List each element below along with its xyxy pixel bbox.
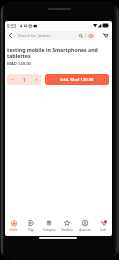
button[interactable]: Decrease quantity bbox=[7, 74, 17, 85]
staticText: testing mobile in Smartphones and tablet… bbox=[7, 46, 109, 59]
button[interactable]: Increase quantity bbox=[31, 74, 41, 85]
button[interactable]: Search by image bbox=[88, 33, 93, 38]
button[interactable]: Back bbox=[6, 31, 15, 40]
staticText: Play bbox=[28, 228, 34, 232]
button[interactable]: Add. Mad 120.00 bbox=[45, 74, 109, 85]
staticText: Vendors bbox=[61, 228, 73, 232]
staticText: Search for 'jackets' bbox=[18, 33, 52, 38]
staticText: Category bbox=[43, 228, 56, 232]
button[interactable]: Cart bbox=[94, 217, 112, 232]
staticText: Account bbox=[79, 228, 91, 232]
button[interactable]: Search for 'jackets' bbox=[15, 31, 95, 40]
staticText: 1 bbox=[23, 77, 26, 83]
staticText: Cart bbox=[100, 228, 106, 232]
staticText: 9:53 bbox=[7, 23, 17, 29]
button[interactable]: Category bbox=[40, 217, 58, 232]
button[interactable]: Home bbox=[5, 217, 22, 232]
button[interactable]: Cart bbox=[101, 31, 110, 40]
button[interactable]: Play bbox=[22, 217, 40, 232]
button[interactable]: Account bbox=[76, 217, 94, 232]
button[interactable]: Vendors bbox=[58, 217, 76, 232]
staticText: Home bbox=[9, 228, 18, 232]
staticText: MAD 120.00 bbox=[7, 61, 31, 67]
staticText: Add. Mad 120.00 bbox=[60, 77, 94, 83]
